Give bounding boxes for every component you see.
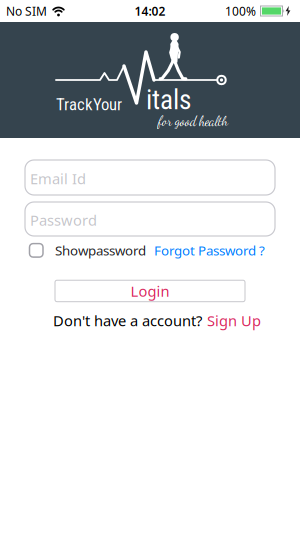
button[interactable]: Email Id [25, 160, 275, 195]
staticText: 14:02 [134, 3, 165, 19]
button[interactable]: Login [55, 280, 245, 302]
staticText: itals [146, 84, 191, 116]
staticText: Login [130, 281, 169, 301]
button[interactable]: Sign Up [207, 311, 261, 330]
button[interactable]: Forgot Password ? [154, 241, 265, 259]
staticText: Showpassword [55, 241, 146, 259]
staticText: TrackYour [56, 95, 122, 114]
staticText: No SIM [6, 3, 47, 19]
staticText: Email Id [30, 169, 86, 188]
staticText: Password [30, 210, 97, 230]
staticText: Don't have a account? [53, 311, 202, 330]
staticText: 100% [225, 3, 256, 19]
staticText: for good health [158, 113, 228, 129]
button[interactable]: Show password [29, 241, 146, 259]
button[interactable]: Password [25, 202, 275, 236]
staticText: Forgot Password ? [154, 241, 265, 259]
staticText: Sign Up [207, 311, 261, 330]
